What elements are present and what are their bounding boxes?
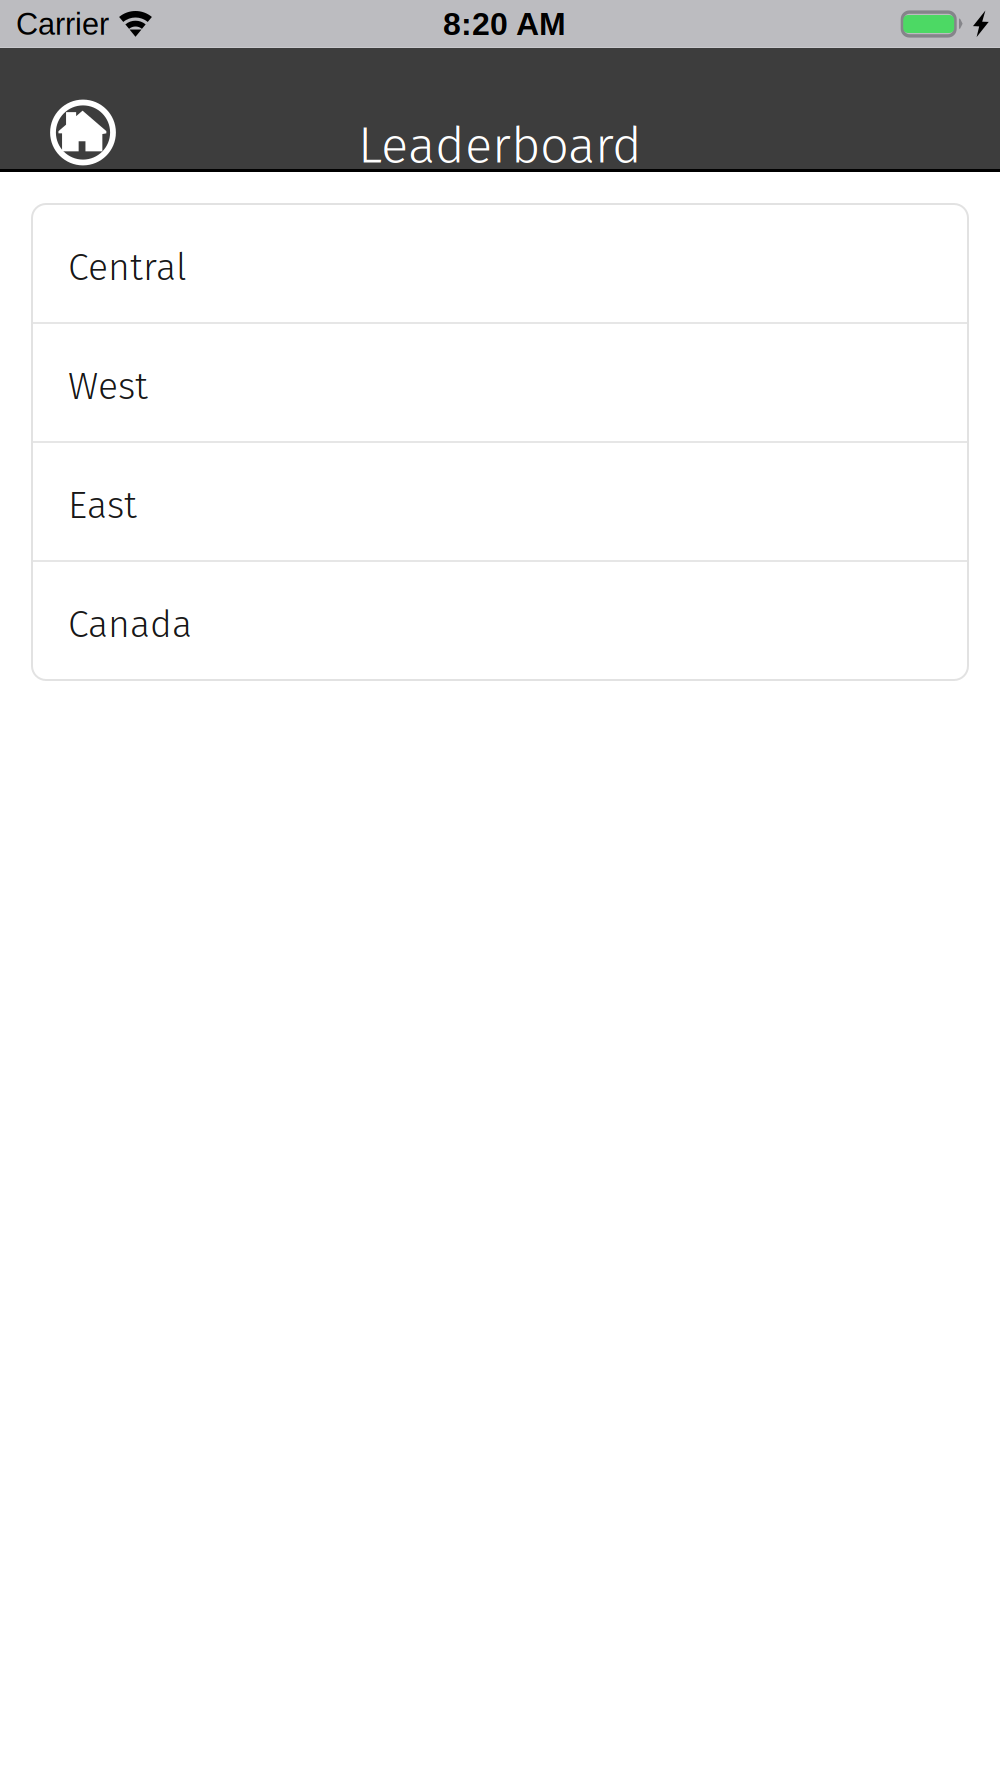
staticText: Carrier bbox=[16, 7, 109, 41]
button[interactable]: East bbox=[32, 442, 968, 561]
staticText: East bbox=[68, 483, 137, 528]
staticText: 8:20 AM bbox=[443, 6, 566, 42]
button[interactable]: Canada bbox=[32, 561, 968, 680]
button[interactable]: Central bbox=[32, 204, 968, 323]
staticText: West bbox=[68, 364, 148, 409]
staticText: Central bbox=[68, 245, 187, 290]
button[interactable]: Home bbox=[33, 87, 133, 177]
staticText: Canada bbox=[68, 602, 192, 647]
button[interactable]: West bbox=[32, 323, 968, 442]
staticText: Leaderboard bbox=[358, 115, 642, 176]
